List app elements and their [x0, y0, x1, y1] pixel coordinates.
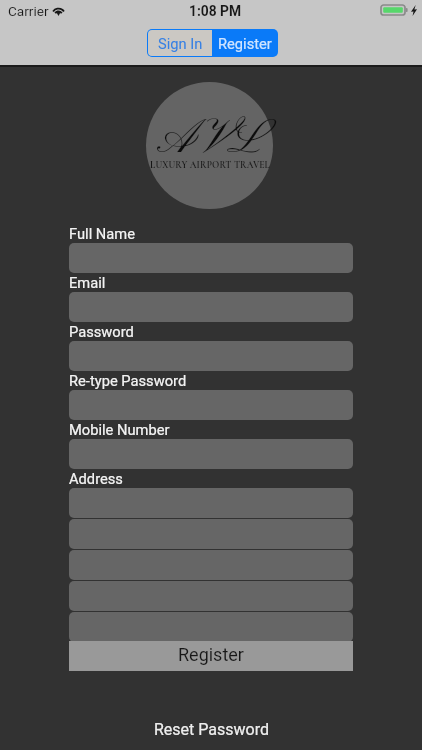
- staticText: 1:08 PM: [189, 3, 242, 19]
- staticText: AVL: [100, 111, 320, 171]
- other: Battery full, charging: [381, 5, 408, 15]
- button[interactable]: Sign In: [148, 30, 212, 56]
- other: Wi-Fi signal: [51, 5, 66, 15]
- staticText: Re-type Password: [69, 372, 187, 389]
- staticText: Email: [69, 274, 106, 291]
- staticText: Sign In: [158, 35, 203, 52]
- staticText: Register: [218, 35, 272, 52]
- button[interactable]: Register: [69, 641, 353, 671]
- staticText: LUXURY AIRPORT TRAVEL: [100, 159, 320, 171]
- staticText: Full Name: [69, 225, 135, 242]
- button[interactable]: Register: [212, 30, 277, 56]
- button[interactable]: Reset Password: [154, 720, 269, 739]
- staticText: Carrier: [8, 3, 49, 19]
- button[interactable]: Address line 5: [69, 612, 353, 642]
- staticText: Address: [69, 470, 123, 487]
- staticText: Register: [178, 644, 244, 665]
- staticText: Mobile Number: [69, 421, 170, 438]
- other: Charging: [411, 5, 417, 16]
- staticText: Reset Password: [154, 720, 269, 739]
- other: AVL Luxury Airport Travel logo: [146, 82, 273, 209]
- staticText: Password: [69, 323, 134, 340]
